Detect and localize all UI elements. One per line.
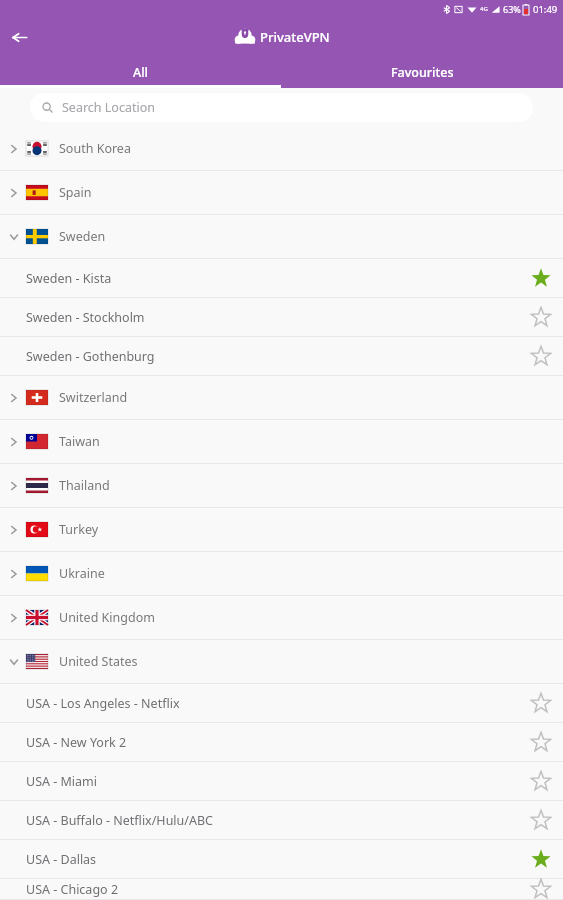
button[interactable]: South Korea bbox=[0, 127, 563, 171]
staticText: South Korea bbox=[59, 140, 131, 157]
staticText: Search Location bbox=[62, 99, 155, 116]
button[interactable]: United States bbox=[0, 640, 563, 684]
button[interactable]: Search Location bbox=[30, 93, 533, 122]
button[interactable]: USA - Miami bbox=[0, 762, 563, 801]
staticText: Spain bbox=[59, 184, 92, 201]
button[interactable]: Add favourite bbox=[521, 879, 561, 899]
button[interactable]: Remove favourite bbox=[521, 259, 561, 297]
staticText: Switzerland bbox=[59, 389, 128, 406]
staticText: USA - Miami bbox=[26, 773, 521, 790]
staticText: Sweden bbox=[59, 228, 106, 245]
staticText: United Kingdom bbox=[59, 609, 155, 626]
button[interactable]: Taiwan bbox=[0, 420, 563, 464]
staticText: Favourites bbox=[391, 64, 454, 81]
button[interactable]: Switzerland bbox=[0, 376, 563, 420]
button[interactable]: Add favourite bbox=[521, 337, 561, 375]
staticText: USA - New York 2 bbox=[26, 734, 521, 751]
staticText: Ukraine bbox=[59, 565, 105, 582]
button[interactable]: All bbox=[0, 56, 281, 88]
staticText: United States bbox=[59, 653, 138, 670]
button[interactable]: Back bbox=[0, 18, 38, 56]
staticText: Taiwan bbox=[59, 433, 100, 450]
button[interactable]: USA - Dallas bbox=[0, 840, 563, 879]
staticText: All bbox=[133, 64, 148, 81]
button[interactable]: Add favourite bbox=[521, 684, 561, 722]
staticText: Sweden - Stockholm bbox=[26, 309, 521, 326]
staticText: USA - Dallas bbox=[26, 851, 521, 868]
button[interactable]: USA - Buffalo - Netflix/Hulu/ABC bbox=[0, 801, 563, 840]
staticText: Thailand bbox=[59, 477, 110, 494]
button[interactable]: Add favourite bbox=[521, 723, 561, 761]
button[interactable]: Sweden - Kista bbox=[0, 259, 563, 298]
staticText: Turkey bbox=[59, 521, 99, 538]
button[interactable]: Favourites bbox=[281, 56, 563, 88]
button[interactable]: USA - New York 2 bbox=[0, 723, 563, 762]
staticText: Sweden - Gothenburg bbox=[26, 348, 521, 365]
button[interactable]: Turkey bbox=[0, 508, 563, 552]
staticText: PrivateVPN bbox=[260, 28, 330, 46]
button[interactable]: Add favourite bbox=[521, 298, 561, 336]
staticText: 01:49 bbox=[533, 3, 558, 16]
staticText: 63% bbox=[503, 3, 521, 15]
button[interactable]: USA - Los Angeles - Netflix bbox=[0, 684, 563, 723]
staticText: Sweden - Kista bbox=[26, 270, 521, 287]
button[interactable]: Add favourite bbox=[521, 801, 561, 839]
button[interactable]: USA - Chicago 2 bbox=[0, 879, 563, 900]
button[interactable]: Sweden - Stockholm bbox=[0, 298, 563, 337]
button[interactable]: United Kingdom bbox=[0, 596, 563, 640]
button[interactable]: Spain bbox=[0, 171, 563, 215]
button[interactable]: Add favourite bbox=[521, 762, 561, 800]
button[interactable]: Ukraine bbox=[0, 552, 563, 596]
staticText: 4G bbox=[480, 5, 488, 13]
button[interactable]: Sweden bbox=[0, 215, 563, 259]
button[interactable]: Remove favourite bbox=[521, 840, 561, 878]
button[interactable]: Thailand bbox=[0, 464, 563, 508]
staticText: USA - Los Angeles - Netflix bbox=[26, 695, 521, 712]
staticText: USA - Chicago 2 bbox=[26, 881, 521, 898]
staticText: USA - Buffalo - Netflix/Hulu/ABC bbox=[26, 812, 521, 829]
button[interactable]: Sweden - Gothenburg bbox=[0, 337, 563, 376]
